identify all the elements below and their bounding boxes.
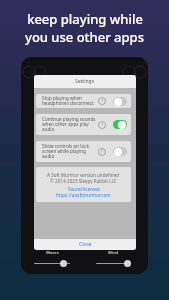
- button[interactable]: Close: [34, 239, 136, 250]
- staticText: A Soft Murmur version undefined: [47, 172, 120, 178]
- staticText: Waves: [46, 250, 59, 256]
- button[interactable]: Toggle off: [113, 147, 127, 156]
- button[interactable]: Show controls on lock screen while playi…: [36, 141, 131, 162]
- staticText: ?: [101, 98, 103, 104]
- staticText: ?: [101, 122, 103, 128]
- button[interactable]: Toggle off: [113, 97, 127, 106]
- staticText: ?: [101, 149, 103, 155]
- button[interactable]: Sound licenses: [68, 186, 100, 192]
- staticText: Close: [79, 241, 92, 248]
- button[interactable]: Stop playing when headphones disconnect: [36, 94, 131, 108]
- staticText: Wind: [108, 250, 119, 256]
- button[interactable]: Toggle on: [113, 120, 127, 129]
- staticText: Stop playing when headphones disconnect: [42, 95, 98, 107]
- button[interactable]: Help: [98, 121, 106, 129]
- button[interactable]: https://asoftmurmur.com: [56, 192, 111, 198]
- staticText: Show controls on lock screen while playi…: [42, 143, 98, 160]
- staticText: keep playing while: [27, 10, 143, 28]
- button[interactable]: Continue playing sounds when other apps …: [36, 114, 131, 135]
- button[interactable]: Wind volume: [96, 259, 130, 267]
- button[interactable]: Help: [98, 97, 106, 105]
- button[interactable]: Waves volume: [34, 259, 70, 267]
- staticText: Continue playing sounds when other apps …: [42, 116, 98, 133]
- staticText: you use other apps: [25, 28, 144, 46]
- staticText: © 2014-2023 Sleepy Rabbit LLC: [50, 178, 117, 184]
- button[interactable]: Help: [98, 148, 106, 156]
- staticText: Settings: [75, 78, 95, 85]
